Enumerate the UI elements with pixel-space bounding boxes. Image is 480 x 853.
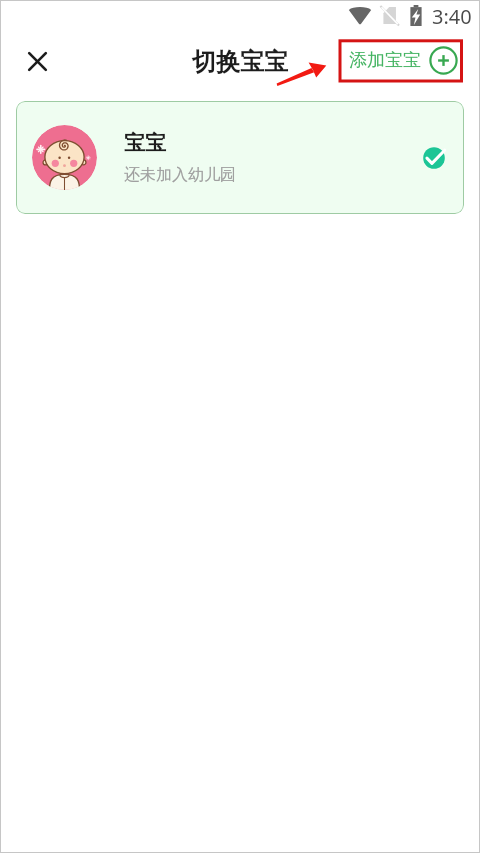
staticText: 还未加入幼儿园	[124, 165, 236, 185]
staticText: 添加宝宝	[349, 49, 421, 72]
button[interactable]: 宝宝	[16, 101, 464, 214]
staticText: 3:40	[432, 3, 472, 30]
button[interactable]: 关闭	[13, 37, 61, 85]
staticText: 切换宝宝	[192, 47, 288, 77]
button[interactable]: 添加宝宝	[349, 46, 458, 75]
staticText: 宝宝	[124, 130, 166, 156]
